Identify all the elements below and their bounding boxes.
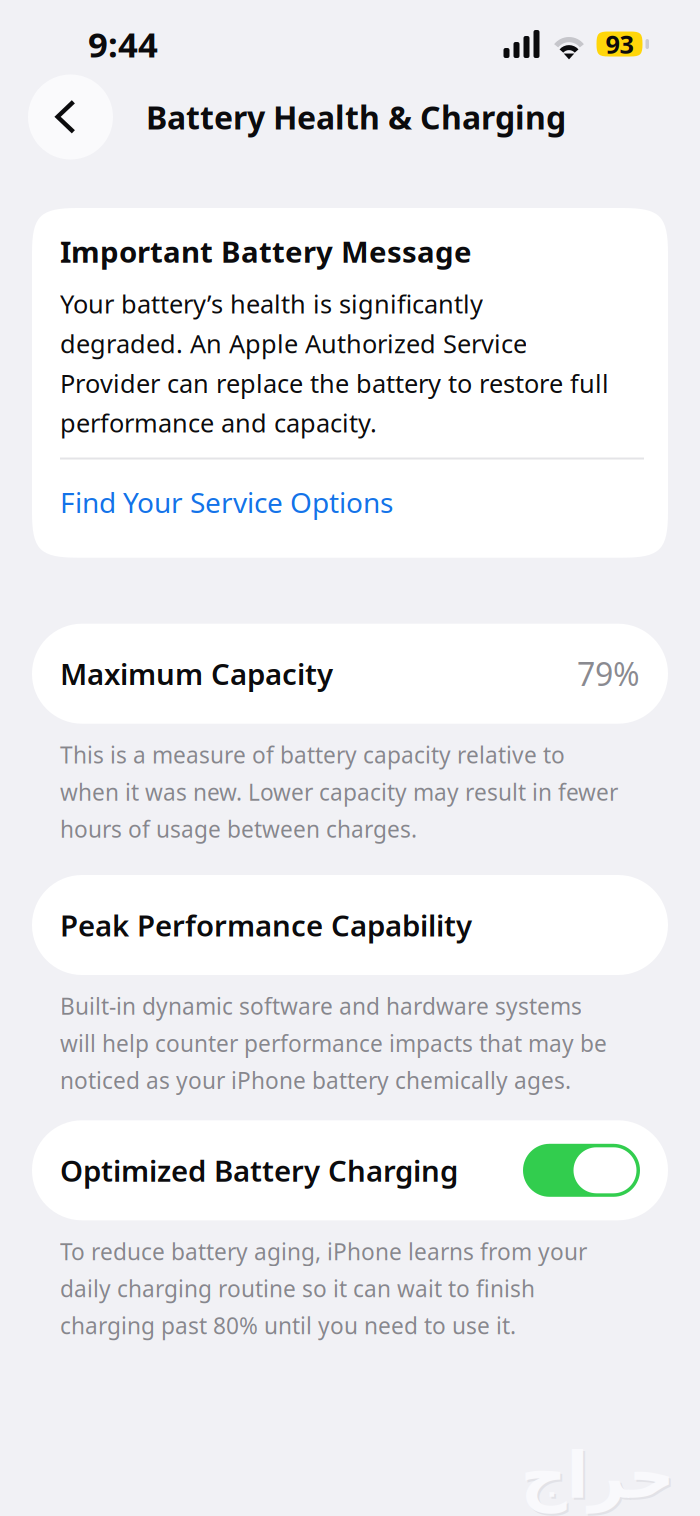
staticText: Important Battery Message [60, 232, 472, 271]
staticText: Find Your Service Options [60, 483, 393, 521]
staticText: 9:44 [88, 21, 158, 67]
staticText: Built-in dynamic software and hardware s… [60, 991, 607, 1095]
button[interactable]: Optimized Battery Charging [523, 1144, 640, 1197]
button[interactable]: Back [28, 74, 113, 159]
staticText: Peak Performance Capability [60, 905, 472, 944]
staticText: Your battery’s health is significantly d… [60, 287, 609, 440]
staticText: To reduce battery aging, iPhone learns f… [60, 1236, 587, 1341]
staticText: Maximum Capacity [60, 654, 333, 693]
staticText: Optimized Battery Charging [60, 1151, 458, 1190]
staticText: حراج [522, 1441, 676, 1514]
staticText: 93 [605, 27, 633, 61]
staticText: Battery Health & Charging [146, 96, 566, 138]
staticText: حراج [520, 1439, 674, 1512]
button[interactable]: Find Your Service Options [60, 459, 640, 525]
staticText: 79% [577, 652, 640, 695]
staticText: This is a measure of battery capacity re… [60, 740, 618, 844]
